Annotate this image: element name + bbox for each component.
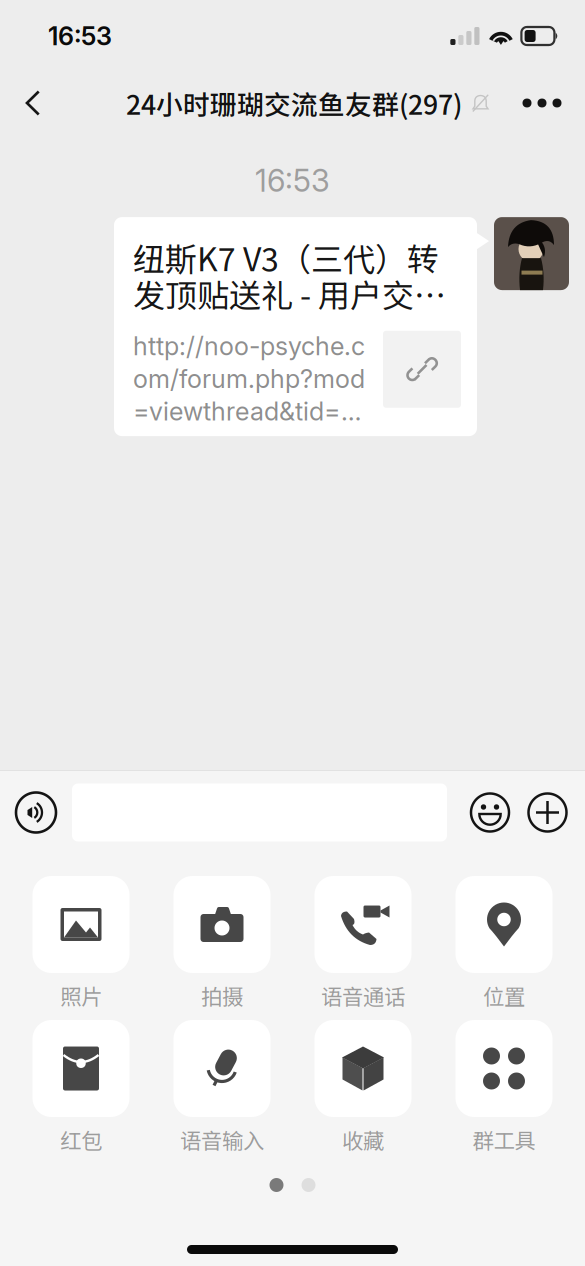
staticText: http://noo-psyche.c om/forum.php?mod =vi… <box>133 331 365 427</box>
button[interactable]: 语音通话 <box>298 876 428 1020</box>
button[interactable]: Back <box>1 71 65 135</box>
button[interactable]: 纽斯K7 V3（三代）转 <box>114 217 477 436</box>
button[interactable]: Emoji <box>460 770 520 855</box>
staticText: 24小时珊瑚交流鱼友群(297) <box>126 84 462 122</box>
button[interactable]: 群工具 <box>439 1020 569 1164</box>
staticText: 群工具 <box>472 1124 535 1155</box>
button[interactable]: 拍摄 <box>157 876 287 1020</box>
button[interactable]: 收藏 <box>298 1020 428 1164</box>
button[interactable]: 照片 <box>16 876 146 1020</box>
staticText: 位置 <box>483 980 525 1011</box>
staticText: 发顶贴送礼 - 用户交… <box>133 270 446 317</box>
button[interactable]: Voice message <box>8 770 64 855</box>
staticText: 16:53 <box>255 162 330 199</box>
staticText: 拍摄 <box>201 980 243 1011</box>
button[interactable]: 红包 <box>16 1020 146 1164</box>
staticText: 纽斯K7 V3（三代）转 <box>133 234 439 280</box>
staticText: 红包 <box>60 1124 102 1155</box>
button[interactable]: More <box>510 71 574 135</box>
button[interactable]: 位置 <box>439 876 569 1020</box>
staticText: 16:53 <box>48 21 112 51</box>
button[interactable]: More options <box>520 770 575 855</box>
staticText: 收藏 <box>342 1124 384 1155</box>
staticText: 照片 <box>60 980 102 1011</box>
staticText: 语音输入 <box>180 1124 264 1155</box>
button[interactable]: 语音输入 <box>157 1020 287 1164</box>
staticText: 语音通话 <box>321 980 405 1011</box>
